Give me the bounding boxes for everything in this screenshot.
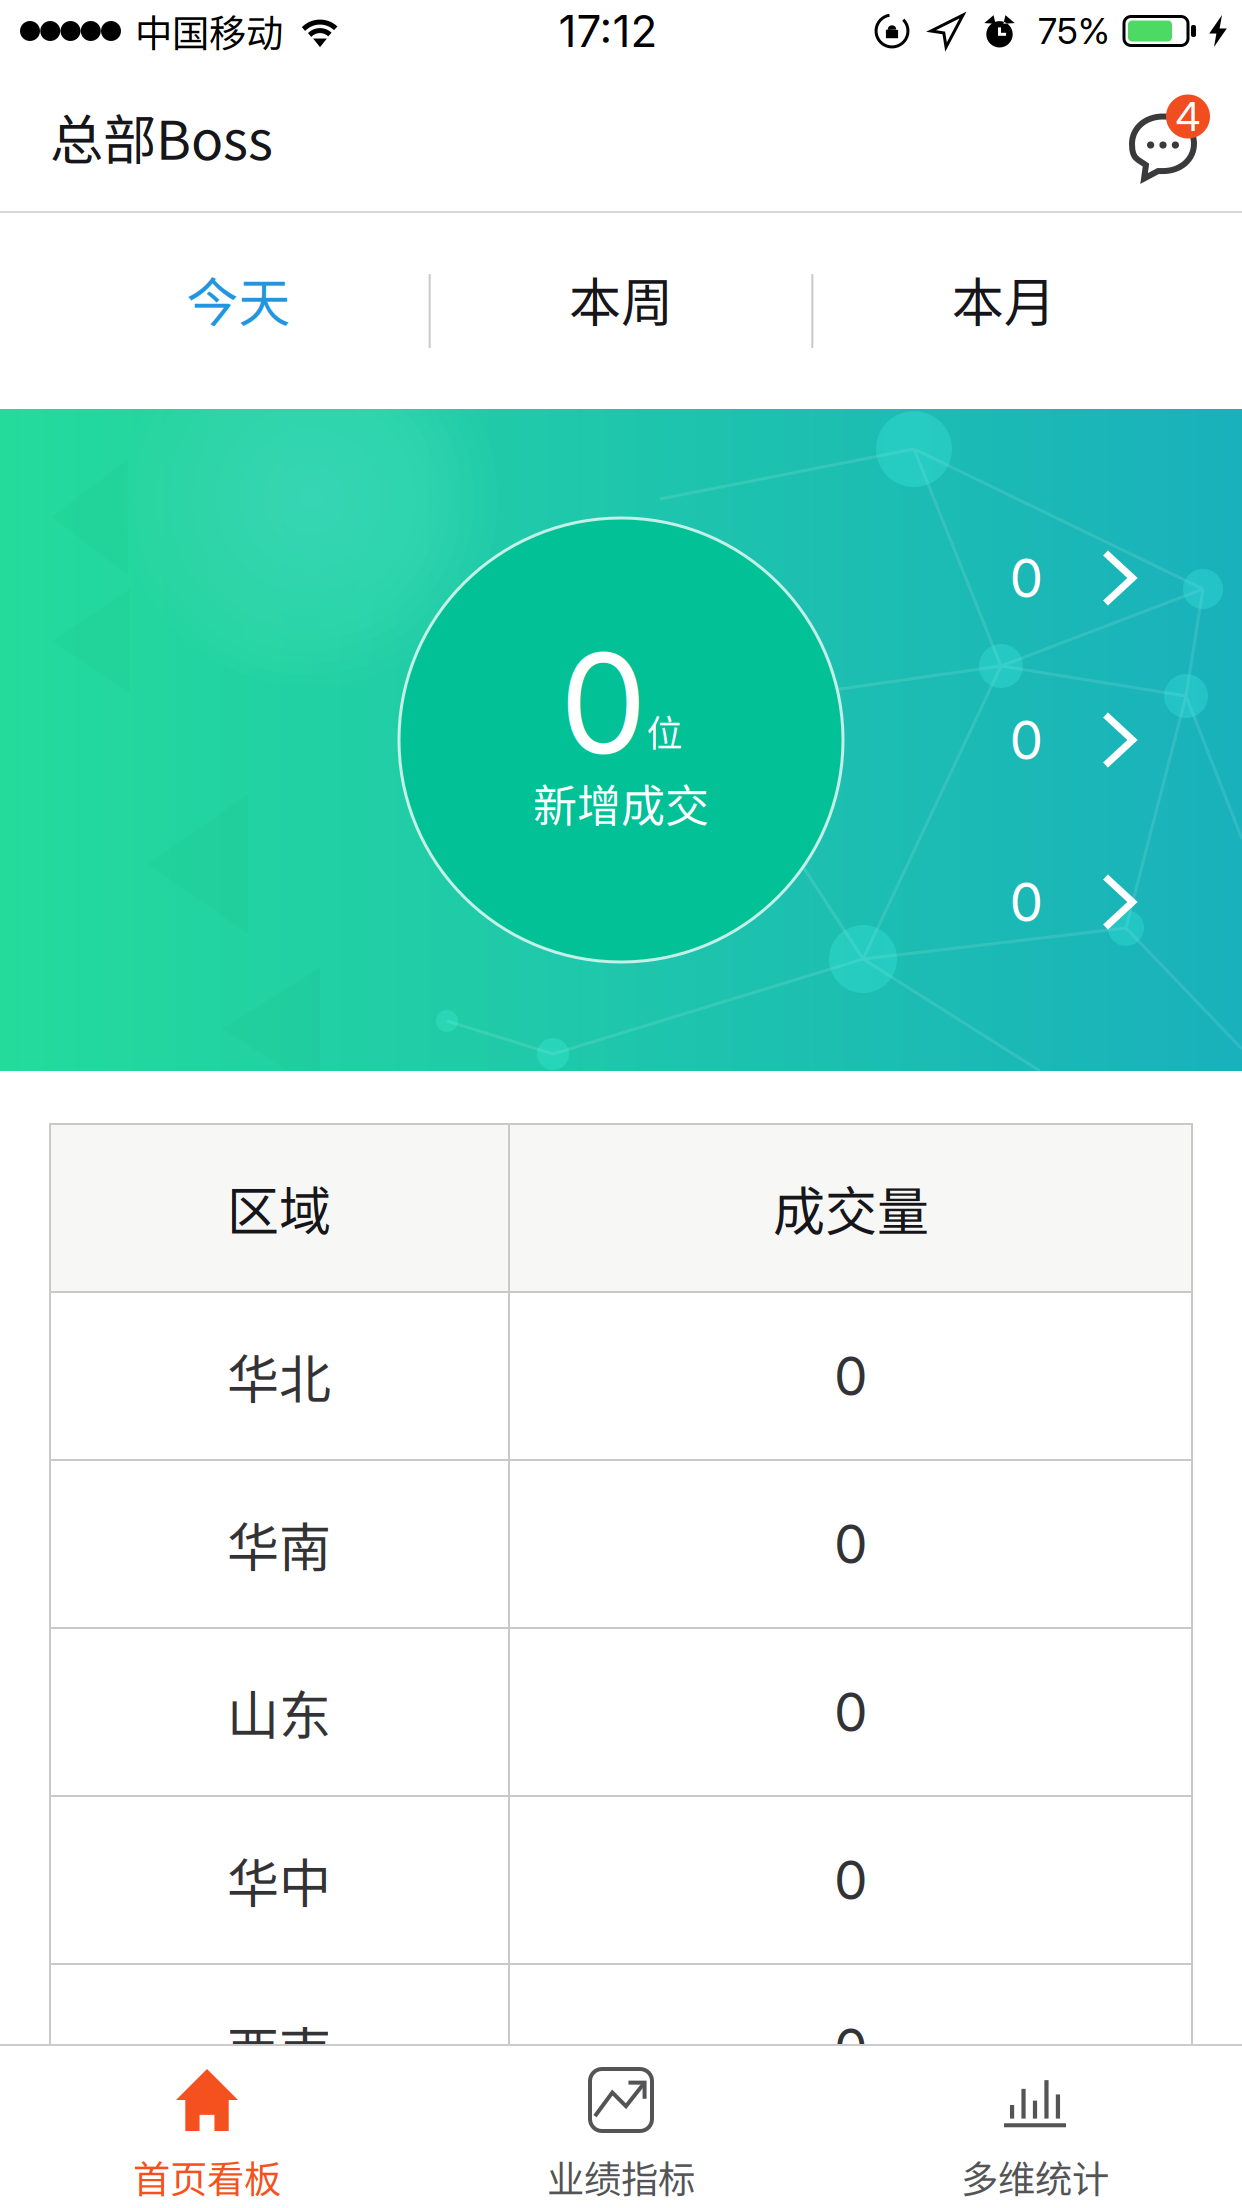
button[interactable]: 0 (946, 821, 1196, 983)
button[interactable]: 本周 (431, 213, 811, 409)
staticText: 华中 (227, 1842, 331, 1918)
staticText: 华南 (227, 1506, 331, 1582)
button[interactable]: 业绩指标 (414, 2046, 828, 2208)
button[interactable]: Messages (1132, 94, 1210, 178)
button[interactable]: 本月 (813, 213, 1194, 409)
staticText: 多维统计 (961, 2150, 1109, 2204)
staticText: 0 (559, 619, 646, 787)
staticText: 今天 (186, 261, 290, 337)
staticText: 0 (834, 1848, 868, 1912)
button[interactable]: 今天 (48, 213, 429, 409)
staticText: 成交量 (773, 1170, 929, 1246)
button[interactable]: 首页看板 (0, 2046, 414, 2208)
staticText: 0 (834, 1512, 868, 1576)
staticText: 首页看板 (133, 2150, 281, 2204)
staticText: 0 (834, 1680, 868, 1744)
staticText: 0 (1009, 708, 1043, 772)
staticText: 0 (834, 1344, 868, 1408)
staticText: 0 (1009, 546, 1043, 610)
button[interactable]: 0 (946, 659, 1196, 821)
staticText: 4 (1175, 92, 1200, 141)
staticText: 本周 (569, 261, 673, 337)
staticText: 华北 (227, 1338, 331, 1414)
staticText: 山东 (227, 1674, 331, 1750)
staticText: 位 (646, 705, 682, 757)
staticText: 本月 (952, 261, 1056, 337)
button[interactable]: 多维统计 (828, 2046, 1242, 2208)
staticText: 0 (834, 2016, 868, 2080)
button[interactable]: 0 (946, 497, 1196, 659)
staticText: 区域 (227, 1170, 331, 1246)
staticText: 新增成交 (533, 771, 709, 835)
staticText: 中国移动 (135, 4, 283, 58)
staticText: 业绩指标 (547, 2150, 695, 2204)
staticText: 0 (1009, 870, 1043, 934)
staticText: 西南 (227, 2010, 331, 2086)
staticText: 75% (1038, 9, 1110, 53)
staticText: 17:12 (558, 4, 657, 58)
staticText: 总部Boss (50, 98, 273, 175)
